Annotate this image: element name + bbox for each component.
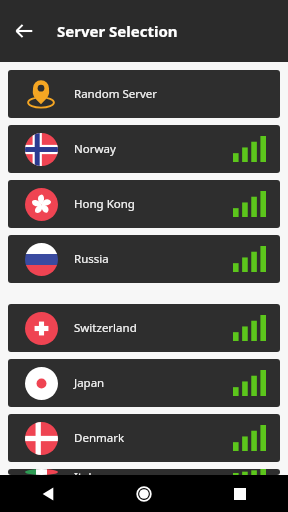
button[interactable]: Random Server: [8, 70, 280, 118]
staticText: Norway: [74, 141, 233, 157]
staticText: Server Selection: [57, 21, 178, 41]
button[interactable]: Denmark: [8, 414, 280, 462]
button[interactable]: Home: [96, 475, 192, 512]
button[interactable]: Norway: [8, 125, 280, 173]
staticText: Random Server: [74, 86, 266, 102]
button[interactable]: Switzerland: [8, 304, 280, 352]
staticText: Russia: [74, 251, 233, 267]
staticText: Denmark: [74, 430, 233, 446]
button[interactable]: Japan: [8, 359, 280, 407]
staticText: Hong Kong: [74, 196, 233, 212]
staticText: Italy: [74, 469, 233, 475]
button[interactable]: Hong Kong: [8, 180, 280, 228]
button[interactable]: Russia: [8, 235, 280, 283]
button[interactable]: Recent apps: [192, 475, 288, 512]
button[interactable]: Back: [0, 475, 96, 512]
button[interactable]: Italy: [8, 469, 280, 475]
staticText: Japan: [74, 375, 233, 391]
staticText: Switzerland: [74, 320, 233, 336]
button[interactable]: Back: [8, 15, 40, 47]
